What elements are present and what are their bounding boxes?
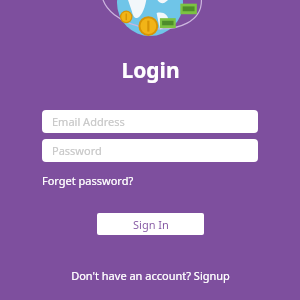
button[interactable]: Password (42, 139, 258, 162)
button[interactable]: Forget password? (42, 170, 134, 191)
staticText: Sign In (133, 217, 169, 232)
staticText: Don't have an account? Signup (71, 268, 230, 283)
button[interactable]: Sign In (97, 213, 204, 235)
staticText: Forget password? (42, 173, 134, 188)
staticText: Email Address (52, 114, 125, 129)
button[interactable]: Email Address (42, 110, 258, 133)
staticText: Password (52, 143, 102, 158)
button[interactable]: Don't have an account? Signup (63, 264, 238, 287)
staticText: Login (121, 56, 180, 85)
